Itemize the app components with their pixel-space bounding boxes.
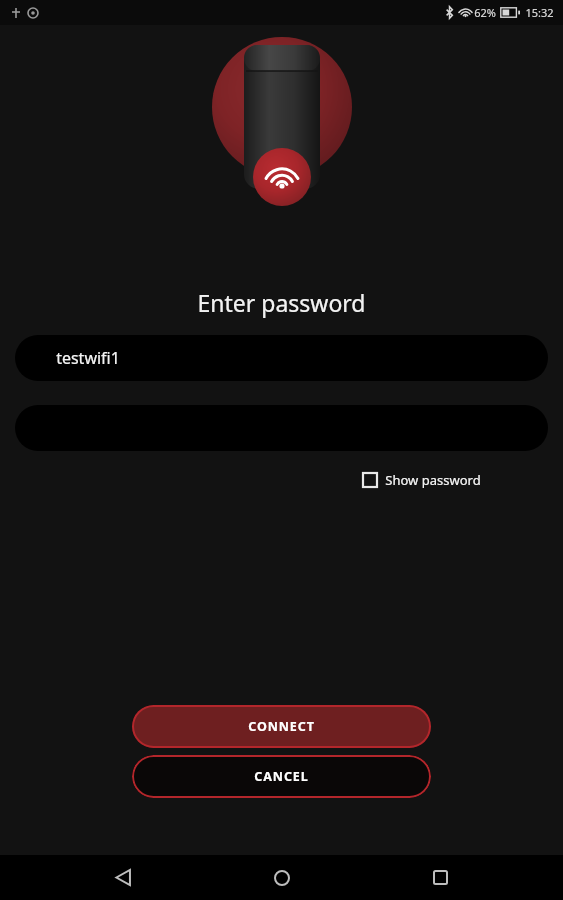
- staticText: 15:32: [525, 5, 554, 20]
- button[interactable]: CANCEL: [132, 755, 431, 798]
- button[interactable]: Back: [88, 855, 158, 900]
- button[interactable]: CONNECT: [132, 705, 431, 748]
- staticText: Show password: [385, 471, 481, 489]
- button[interactable]: Recent apps: [405, 855, 475, 900]
- staticText: CANCEL: [254, 768, 309, 785]
- staticText: testwifi1: [56, 347, 120, 369]
- button[interactable]: Home: [247, 855, 317, 900]
- button[interactable]: Show password: [358, 465, 485, 495]
- staticText: CONNECT: [248, 718, 315, 735]
- other: Speaker device: [192, 37, 372, 225]
- staticText: 62%: [474, 5, 496, 20]
- button[interactable]: testwifi1: [15, 335, 548, 381]
- staticText: Enter password: [197, 287, 366, 318]
